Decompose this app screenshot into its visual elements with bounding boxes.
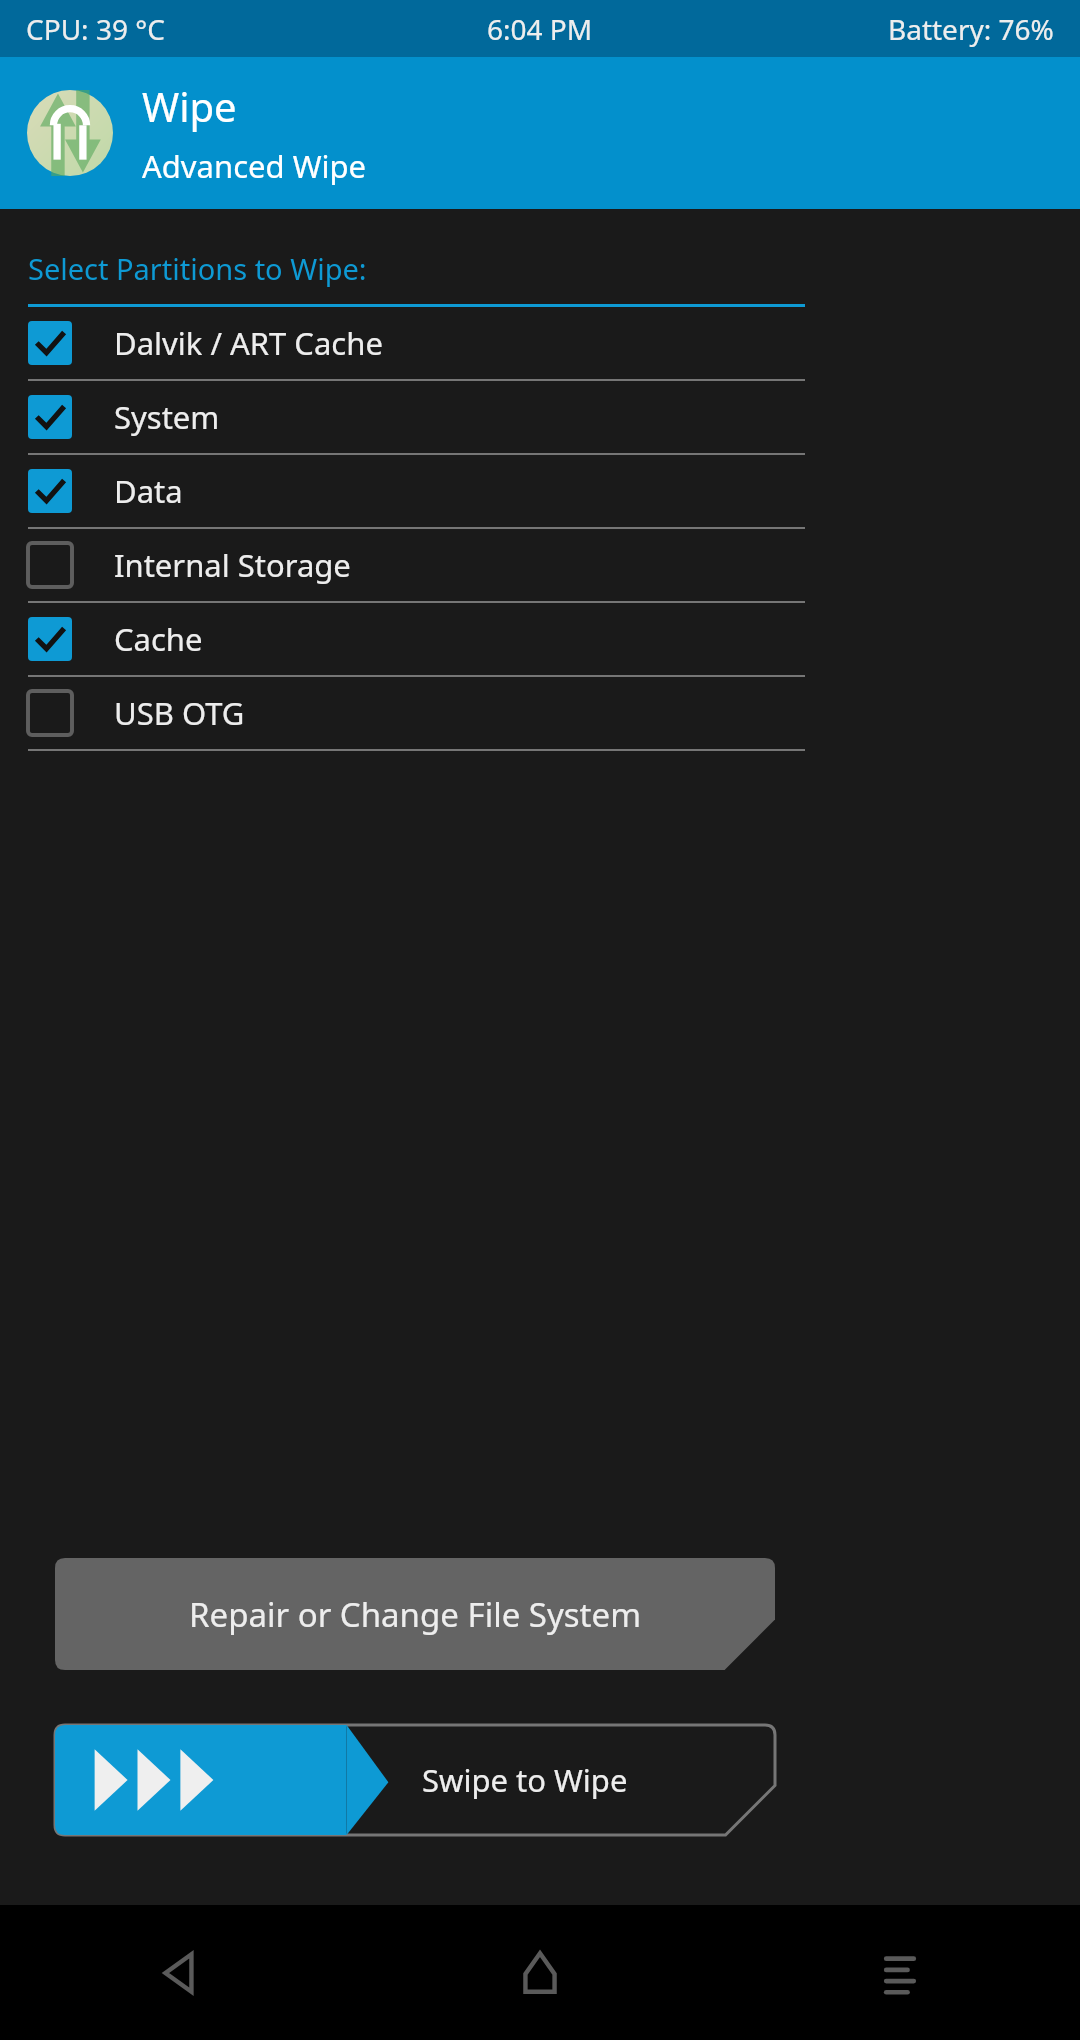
staticText: Advanced Wipe	[142, 145, 367, 187]
button[interactable]: System	[0, 381, 1080, 455]
button[interactable]: Internal Storage	[0, 529, 1080, 603]
button[interactable]: USB OTG	[0, 677, 1080, 751]
staticText: 6:04 PM	[487, 10, 593, 48]
button[interactable]: Dalvik / ART Cache	[0, 307, 1080, 381]
staticText: Swipe to Wipe	[422, 1759, 628, 1801]
button[interactable]: Repair or Change File System	[55, 1558, 775, 1670]
button[interactable]: Back	[0, 1905, 360, 2040]
staticText: Cache	[114, 618, 203, 660]
button[interactable]: Cache	[0, 603, 1080, 677]
staticText: USB OTG	[114, 692, 245, 734]
button[interactable]: Menu	[720, 1905, 1080, 2040]
button[interactable]: Data	[0, 455, 1080, 529]
button[interactable]: Swipe to Wipe	[55, 1725, 775, 1835]
staticText: System	[114, 396, 220, 438]
staticText: Battery: 76%	[888, 10, 1054, 48]
staticText: Wipe	[142, 79, 237, 133]
staticText: CPU: 39 °C	[26, 10, 165, 48]
staticText: Select Partitions to Wipe:	[28, 249, 367, 288]
button[interactable]: Home	[360, 1905, 720, 2040]
staticText: Data	[114, 470, 183, 512]
staticText: Internal Storage	[114, 544, 351, 586]
staticText: Dalvik / ART Cache	[114, 322, 383, 364]
staticText: Repair or Change File System	[189, 1592, 641, 1637]
